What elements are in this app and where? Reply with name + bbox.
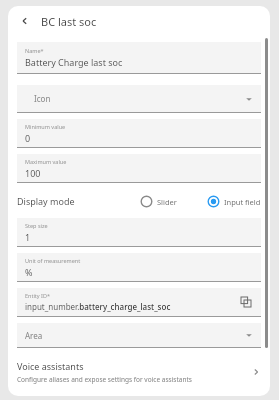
staticText: % xyxy=(25,266,33,278)
staticText: Configure aliases and expose settings fo… xyxy=(17,375,192,384)
button[interactable]: Entity ID* xyxy=(17,288,261,317)
button[interactable]: Step size xyxy=(17,218,261,247)
button[interactable]: Copy entity ID xyxy=(239,295,253,309)
button[interactable]: Minimum value xyxy=(17,119,261,148)
button[interactable]: Back xyxy=(17,13,33,29)
staticText: Area xyxy=(25,330,43,341)
staticText: Name* xyxy=(25,47,44,54)
button[interactable]: Name* xyxy=(17,42,261,74)
staticText: 100 xyxy=(25,167,41,179)
button[interactable]: Slider xyxy=(140,195,177,208)
button[interactable]: Voice assistants xyxy=(17,360,261,384)
staticText: 1 xyxy=(25,231,31,243)
staticText: Unit of measurement xyxy=(25,257,81,264)
staticText: Battery Charge last soc xyxy=(25,56,123,68)
button[interactable]: Input field xyxy=(207,195,261,208)
button[interactable]: Area xyxy=(17,323,261,348)
staticText: 0 xyxy=(25,132,31,144)
button[interactable]: Unit of measurement xyxy=(17,253,261,282)
staticText: Icon xyxy=(34,93,51,104)
staticText: Input field xyxy=(224,197,261,207)
staticText: Minimum value xyxy=(25,123,66,130)
staticText: Slider xyxy=(157,197,177,207)
staticText: Maximum value xyxy=(25,158,67,165)
button[interactable]: Maximum value xyxy=(17,154,261,183)
button[interactable]: Icon xyxy=(17,85,261,113)
staticText: Entity ID* xyxy=(25,292,50,299)
staticText: Display mode xyxy=(17,195,75,207)
staticText: input_number.battery_charge_last_soc xyxy=(25,301,171,312)
staticText: BC last soc xyxy=(41,14,97,29)
staticText: Voice assistants xyxy=(17,360,84,372)
staticText: Step size xyxy=(25,222,48,229)
